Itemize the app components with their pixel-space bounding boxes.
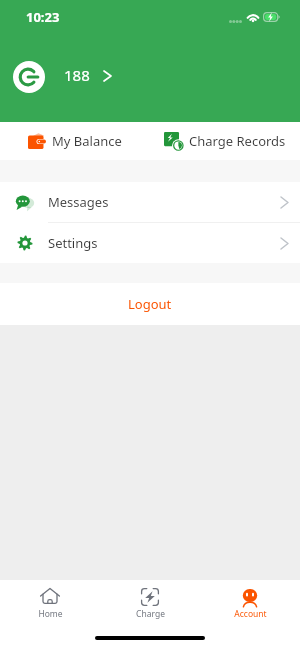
button[interactable]: Home [0,587,100,620]
button[interactable]: My Balance [0,122,150,160]
staticText: Settings [48,234,98,252]
staticText: Logout [128,295,172,313]
staticText: My Balance [52,132,122,150]
staticText: Home [38,608,63,620]
button[interactable]: Charge Records [150,122,300,160]
button[interactable]: Messages [0,182,300,222]
staticText: Charge Records [189,132,286,150]
staticText: Account [234,608,267,620]
button[interactable]: Account 188, open profile [0,61,300,93]
button[interactable]: Logout [0,283,300,325]
button[interactable]: Charge [100,587,200,620]
staticText: Messages [48,193,109,211]
staticText: 188 [64,65,90,85]
button[interactable]: Account [200,587,300,620]
staticText: Charge [136,608,165,620]
button[interactable]: Settings [0,223,300,263]
staticText: 10:23 [26,8,60,26]
